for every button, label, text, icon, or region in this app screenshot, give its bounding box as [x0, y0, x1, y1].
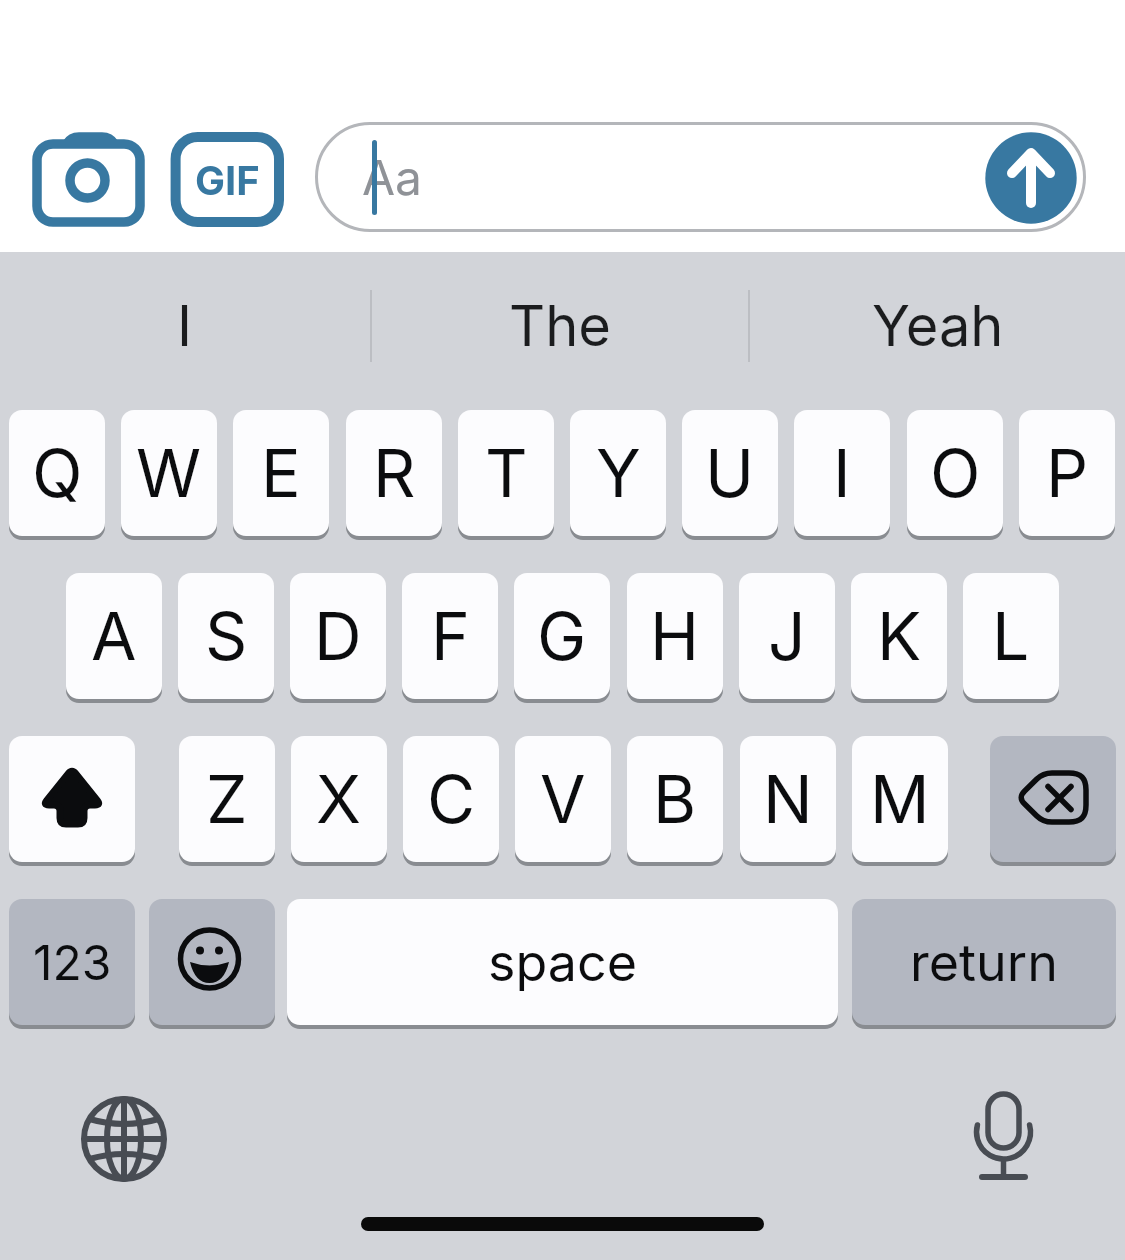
staticText: Q [32, 433, 83, 513]
button[interactable]: I [794, 410, 890, 536]
button[interactable]: V [515, 736, 611, 862]
button[interactable]: 123 [9, 899, 135, 1025]
staticText: U [705, 433, 755, 513]
button[interactable]: E [233, 410, 329, 536]
button[interactable]: The [372, 280, 748, 372]
staticText: K [877, 596, 922, 676]
button[interactable]: Y [570, 410, 666, 536]
staticText: Y [596, 433, 641, 513]
staticText: L [992, 596, 1030, 676]
staticText: G [537, 596, 587, 676]
button[interactable]: GIF [170, 130, 285, 230]
staticText: The [509, 292, 611, 360]
staticText: C [427, 759, 476, 839]
button[interactable]: P [1019, 410, 1115, 536]
button[interactable]: B [627, 736, 723, 862]
button[interactable]: X [291, 736, 387, 862]
button[interactable]: U [682, 410, 778, 536]
button[interactable]: Q [9, 410, 105, 536]
button[interactable] [985, 132, 1077, 224]
staticText: B [653, 759, 697, 839]
button[interactable]: Yeah [750, 280, 1125, 372]
staticText: GIF [195, 156, 260, 204]
button[interactable] [82, 1097, 166, 1181]
button[interactable]: W [121, 410, 217, 536]
button[interactable]: M [852, 736, 948, 862]
button[interactable] [30, 125, 150, 235]
staticText: Aa [362, 148, 423, 206]
button[interactable]: G [514, 573, 610, 699]
staticText: X [316, 759, 362, 839]
button[interactable]: O [907, 410, 1003, 536]
staticText: P [1046, 433, 1089, 513]
staticText: Z [206, 759, 248, 839]
staticText: A [91, 596, 137, 676]
button[interactable]: H [627, 573, 723, 699]
button[interactable]: Aa [315, 122, 1086, 232]
button[interactable]: T [458, 410, 554, 536]
button[interactable] [149, 899, 275, 1025]
button[interactable]: space [287, 899, 838, 1025]
staticText: 123 [33, 933, 112, 991]
staticText: Yeah [872, 292, 1004, 360]
staticText: J [768, 596, 806, 676]
button[interactable]: return [852, 899, 1116, 1025]
staticText: N [763, 759, 813, 839]
button[interactable]: I [0, 280, 370, 372]
staticText: F [431, 596, 470, 676]
staticText: O [930, 433, 981, 513]
button[interactable] [9, 736, 135, 862]
staticText: M [870, 759, 930, 839]
staticText: return [910, 931, 1058, 994]
button[interactable]: J [739, 573, 835, 699]
staticText: E [261, 433, 301, 513]
staticText: I [177, 292, 193, 360]
button[interactable] [990, 736, 1116, 862]
button[interactable]: K [851, 573, 947, 699]
staticText: S [205, 596, 248, 676]
button[interactable]: C [403, 736, 499, 862]
button[interactable]: A [66, 573, 162, 699]
button[interactable]: D [290, 573, 386, 699]
button[interactable]: N [740, 736, 836, 862]
staticText: D [314, 596, 362, 676]
button[interactable]: F [402, 573, 498, 699]
staticText: I [833, 433, 851, 513]
staticText: T [485, 433, 528, 513]
staticText: space [488, 931, 638, 994]
button[interactable]: S [178, 573, 274, 699]
staticText: R [373, 433, 416, 513]
button[interactable] [965, 1085, 1045, 1195]
staticText: W [136, 433, 202, 513]
staticText: H [650, 596, 700, 676]
button[interactable]: L [963, 573, 1059, 699]
button[interactable]: R [346, 410, 442, 536]
button[interactable]: Z [179, 736, 275, 862]
staticText: V [540, 759, 586, 839]
